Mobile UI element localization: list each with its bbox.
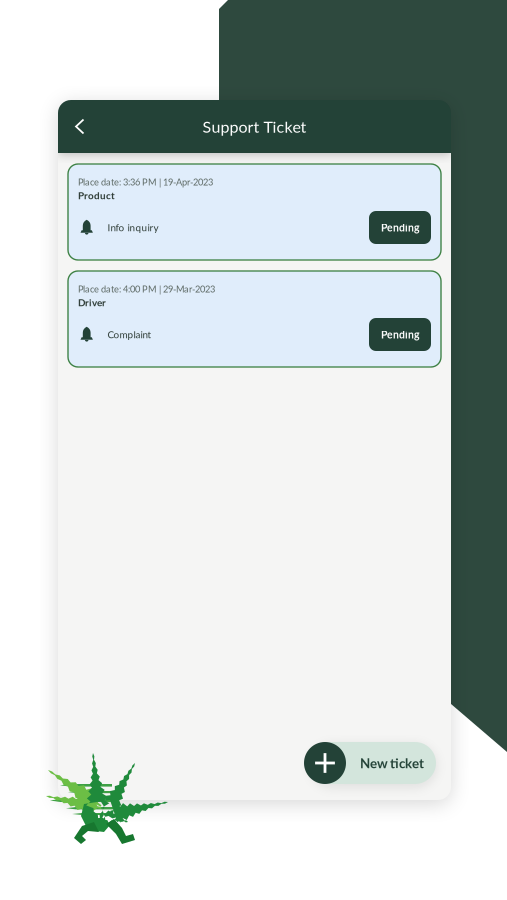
staticText: Driver: [78, 297, 106, 308]
staticText: Pending: [381, 221, 419, 234]
button[interactable]: New ticket: [311, 742, 436, 784]
staticText: Complaint: [107, 329, 151, 340]
staticText: Place date: 3:36 PM | 19-Apr-2023: [78, 176, 213, 187]
staticText: Place date: 4:00 PM | 29-Mar-2023: [78, 283, 215, 294]
staticText: New ticket: [360, 755, 424, 771]
staticText: Pending: [381, 328, 419, 341]
staticText: Product: [78, 190, 115, 201]
staticText: Info inquiry: [107, 222, 158, 233]
button[interactable]: Place date: 4:00 PM | 29-Mar-2023: [68, 271, 441, 367]
button[interactable]: Place date: 3:36 PM | 19-Apr-2023: [68, 164, 441, 260]
button[interactable]: Back: [58, 108, 97, 145]
staticText: Support Ticket: [202, 117, 306, 136]
